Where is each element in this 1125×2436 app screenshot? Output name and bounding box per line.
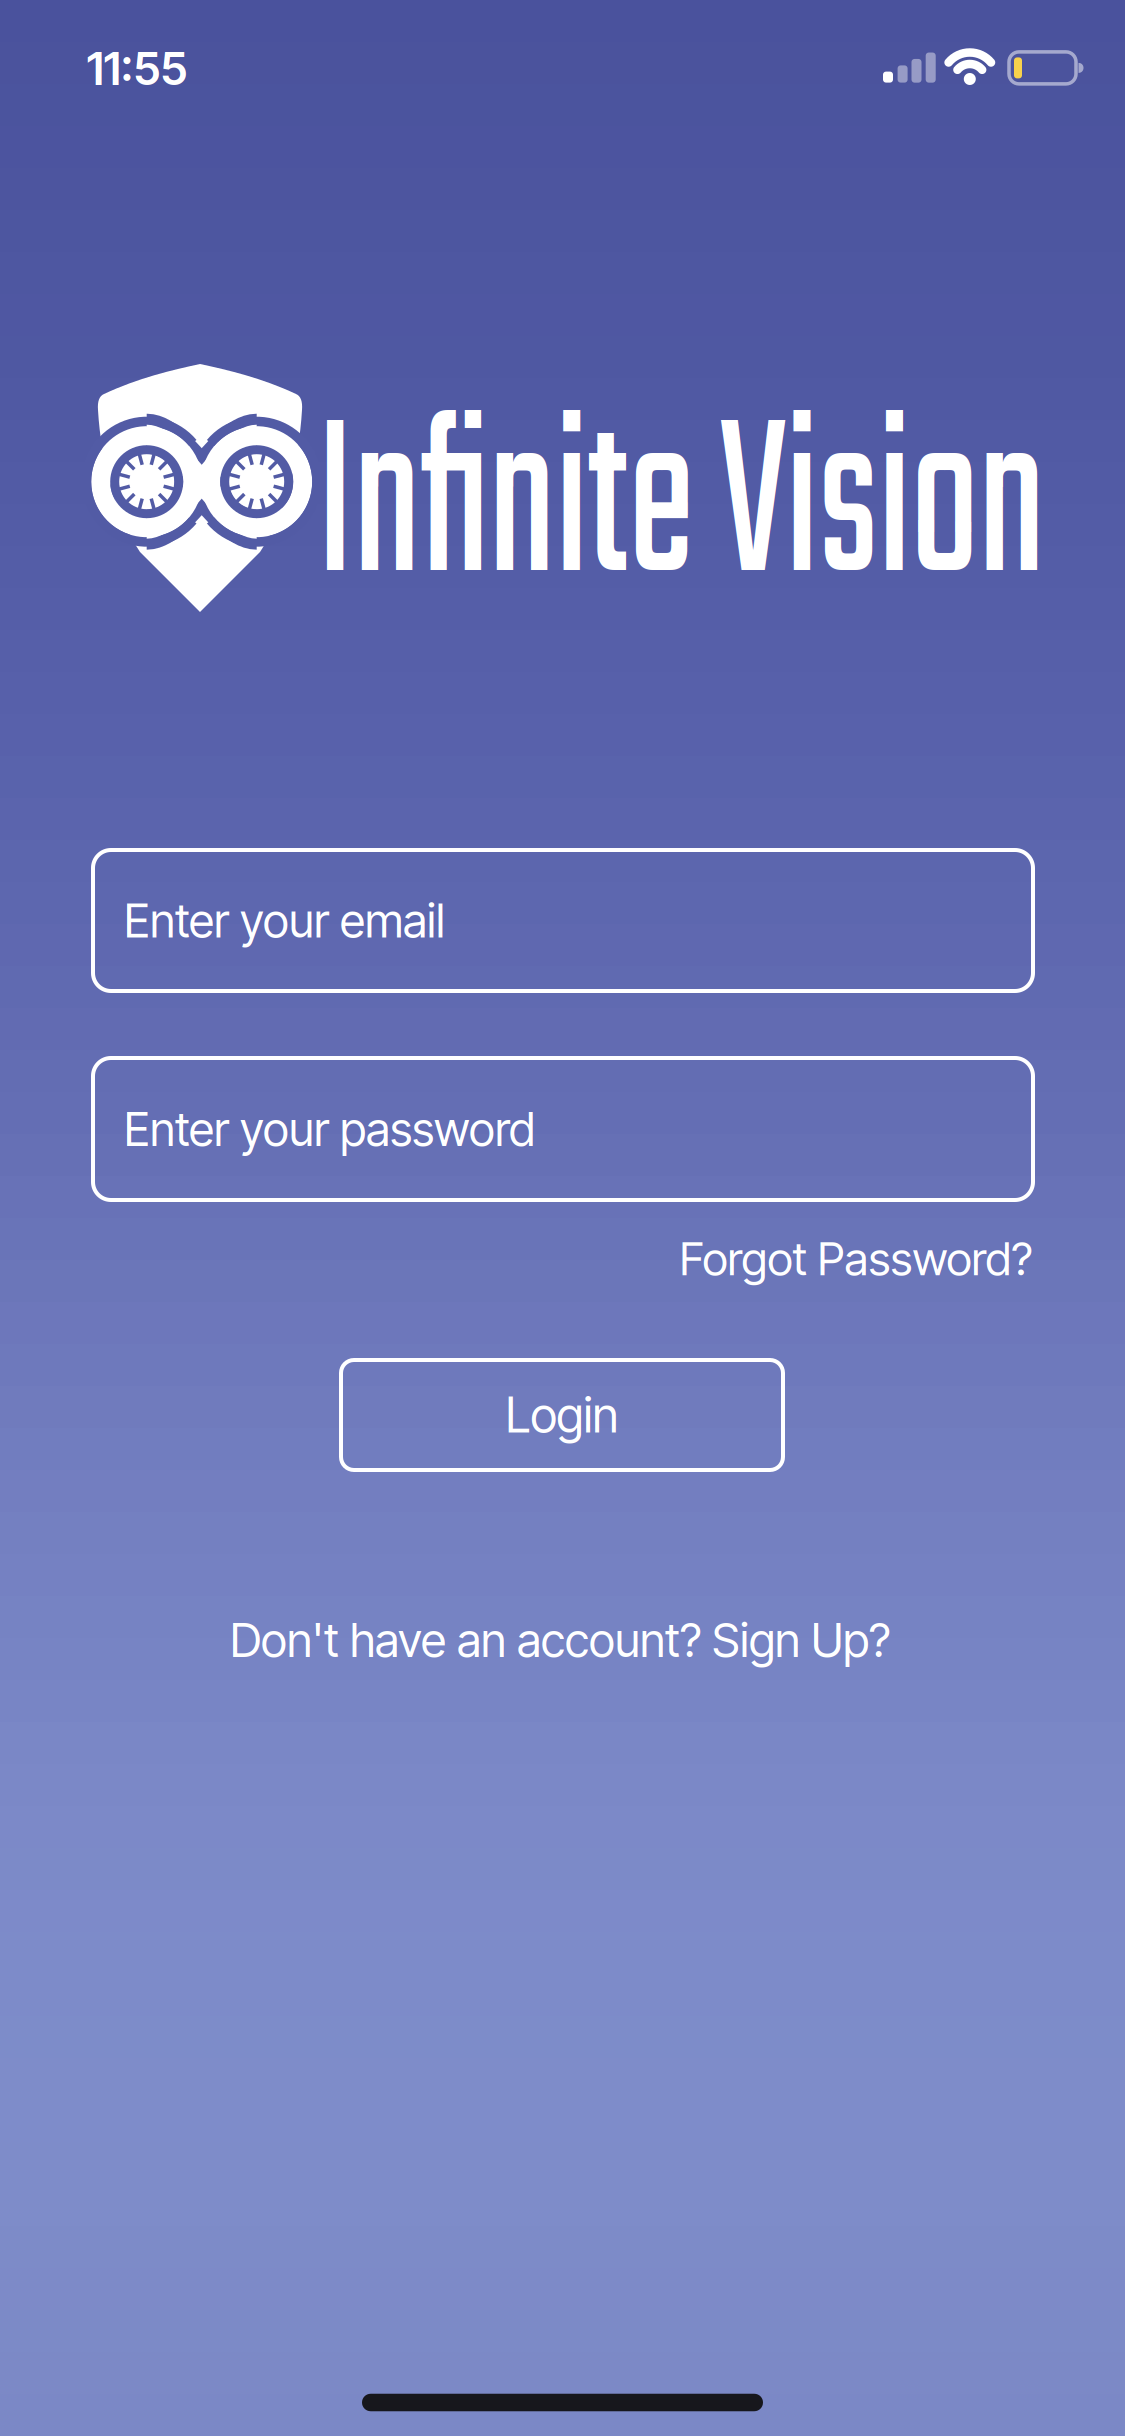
- staticText: 11:55: [86, 41, 187, 96]
- button[interactable]: Don't have an account? Sign Up?: [230, 1612, 890, 1668]
- staticText: Enter your password: [124, 1101, 535, 1157]
- staticText: Infinite Vision: [199, 340, 1125, 684]
- button[interactable]: Enter your email: [93, 850, 1033, 991]
- button[interactable]: Enter your password: [93, 1058, 1033, 1200]
- staticText: Don't have an account? Sign Up?: [230, 1612, 890, 1668]
- staticText: Forgot Password?: [679, 1231, 1032, 1286]
- staticText: Login: [505, 1386, 618, 1444]
- button[interactable]: Login: [341, 1360, 783, 1470]
- staticText: Enter your email: [124, 892, 445, 949]
- button[interactable]: Forgot Password?: [679, 1231, 1032, 1286]
